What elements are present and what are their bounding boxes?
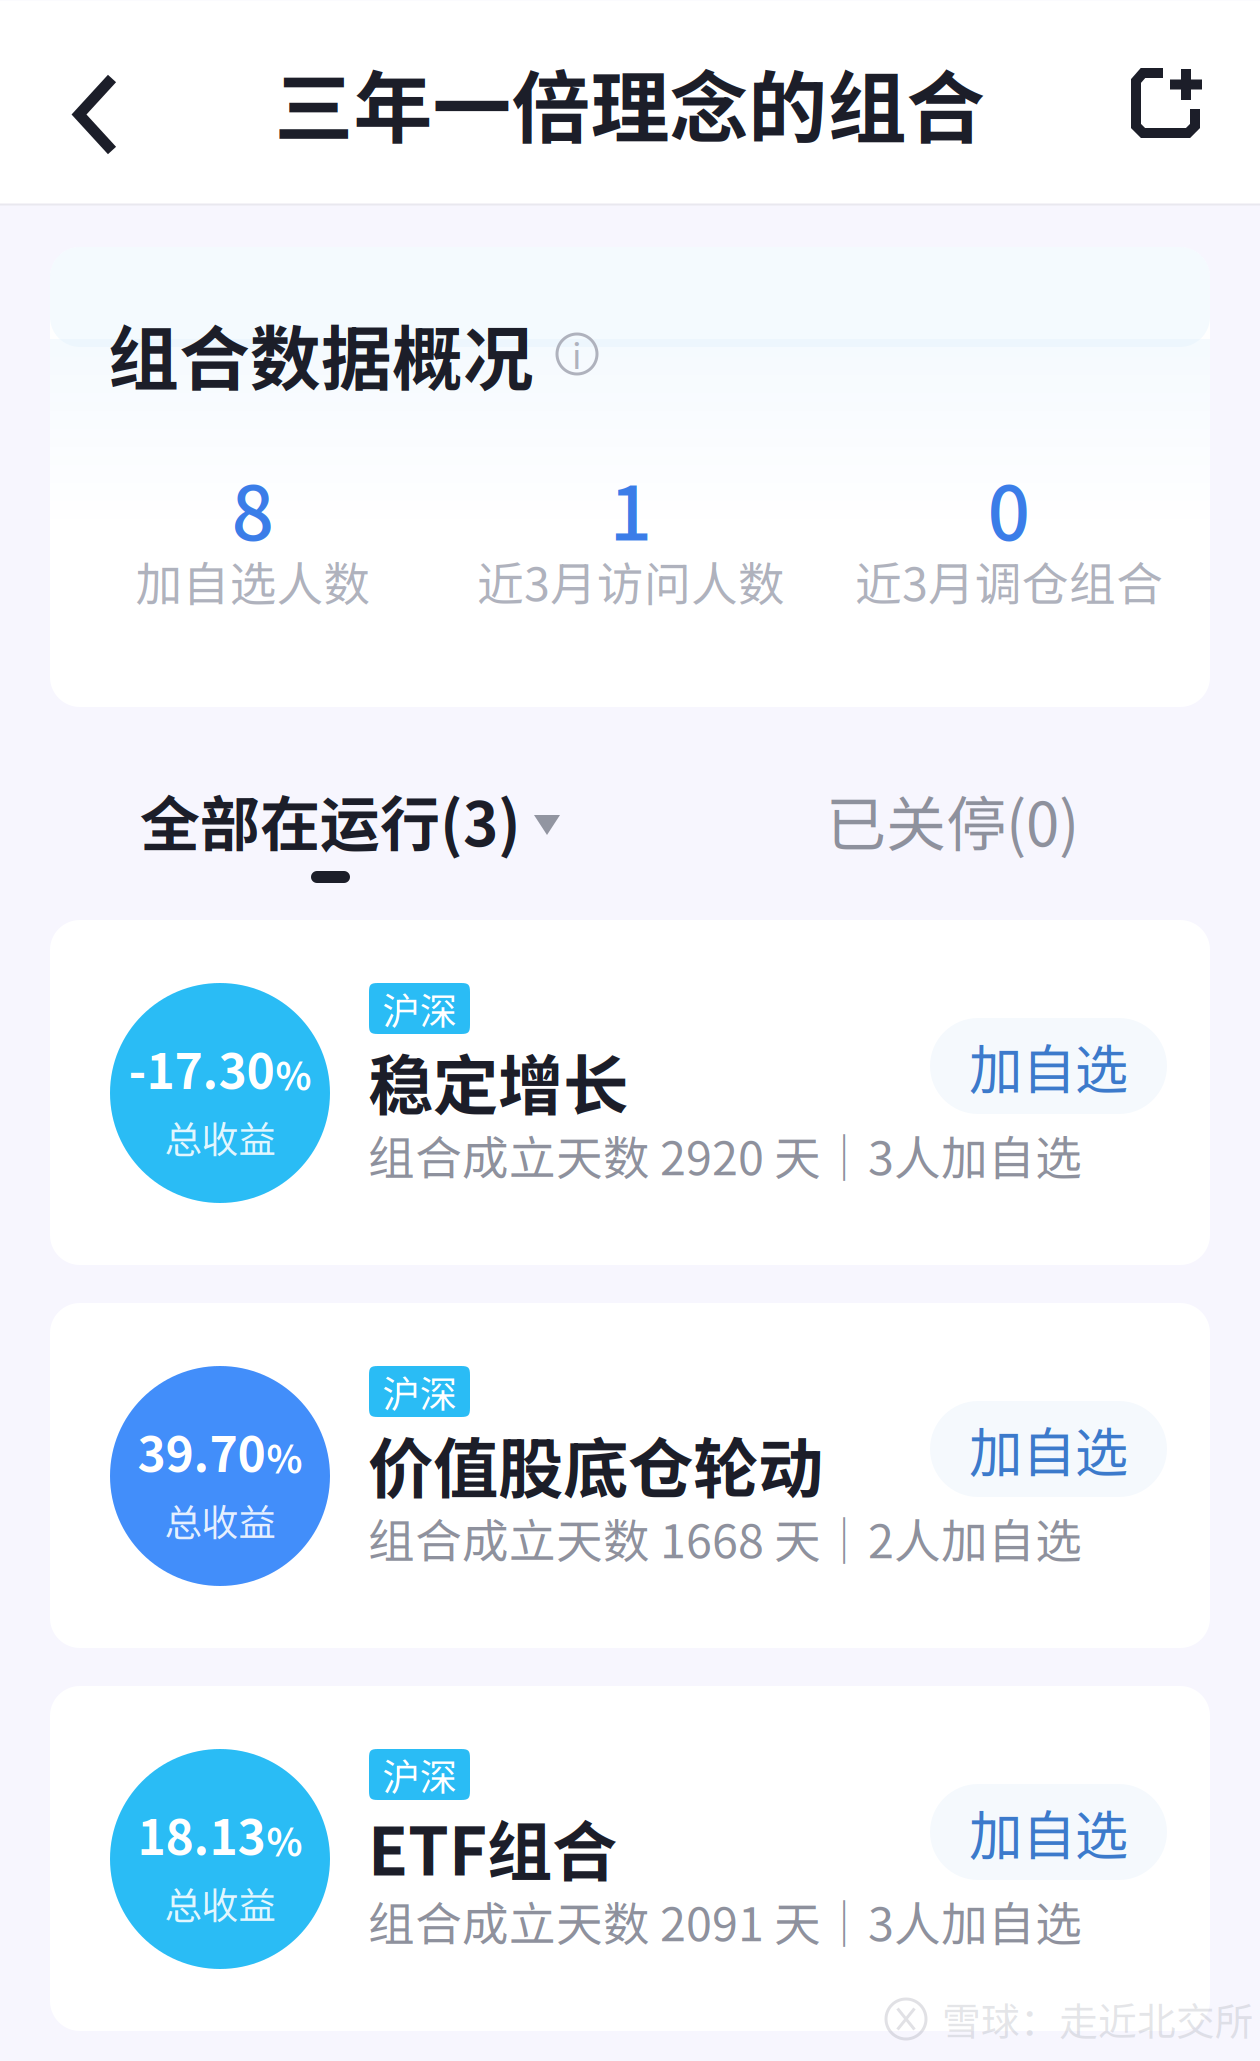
staticText: 已关停(0) [826, 777, 1079, 863]
button[interactable]: 加自选 [930, 1401, 1167, 1497]
button[interactable]: 39.70 [50, 1303, 1210, 1648]
button[interactable]: 全部在运行(3) [140, 780, 560, 860]
staticText: 组合成立天数 2920 天｜3人加自选 [368, 1121, 1082, 1189]
staticText: 加自选 [969, 1027, 1128, 1105]
staticText: % [275, 1047, 311, 1101]
staticText: 组合成立天数 1668 天｜2人加自选 [368, 1504, 1082, 1572]
button[interactable]: 加自选 [930, 1784, 1167, 1880]
button[interactable]: 18.13 [50, 1686, 1210, 2031]
staticText: 稳定增长 [368, 1034, 628, 1128]
staticText: -17.30 [128, 1033, 274, 1103]
staticText: 总收益 [164, 1493, 275, 1547]
staticText: 价值股底仓轮动 [368, 1417, 823, 1511]
staticText: 加自选 [969, 1793, 1128, 1871]
staticText: 全部在运行(3) [140, 777, 521, 863]
staticText: 39.70 [137, 1416, 265, 1486]
staticText: 沪深 [382, 1747, 456, 1802]
staticText: % [266, 1813, 302, 1867]
staticText: 加自选人数 [135, 547, 370, 615]
button[interactable]: Add to watchlist folder [1100, 37, 1232, 169]
staticText: 沪深 [382, 1364, 456, 1419]
staticText: i [572, 329, 582, 379]
staticText: % [266, 1430, 302, 1484]
button[interactable]: 已关停(0) [826, 780, 1079, 860]
staticText: 总收益 [164, 1110, 275, 1164]
button[interactable]: -17.30 [50, 920, 1210, 1265]
staticText: 近3月访问人数 [477, 547, 785, 615]
staticText: 8 [231, 454, 274, 562]
staticText: 总收益 [164, 1876, 275, 1930]
staticText: ETF组合 [368, 1800, 617, 1894]
staticText: 0 [987, 454, 1030, 562]
staticText: 近3月调仓组合 [855, 547, 1163, 615]
staticText: 组合数据概况 [108, 303, 534, 405]
staticText: 加自选 [969, 1410, 1128, 1488]
staticText: 三年一倍理念的组合 [274, 45, 985, 159]
staticText: 雪球：走近北交所 [942, 1991, 1254, 2047]
button[interactable]: 加自选 [930, 1018, 1167, 1114]
staticText: 1 [609, 454, 652, 562]
staticText: 组合成立天数 2091 天｜3人加自选 [368, 1887, 1082, 1955]
staticText: 沪深 [382, 981, 456, 1036]
button[interactable]: Back [30, 48, 162, 180]
staticText: 18.13 [137, 1799, 265, 1869]
